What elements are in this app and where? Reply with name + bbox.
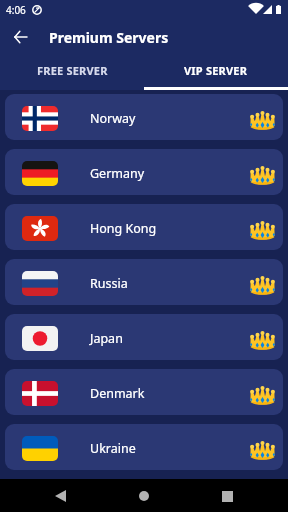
button[interactable]: Recents (215, 484, 239, 508)
staticText: Germany (90, 165, 145, 182)
staticText: 4:06 (6, 3, 26, 17)
staticText: Japan (90, 330, 123, 347)
staticText: FREE SERVER (37, 63, 108, 78)
staticText: Denmark (90, 385, 145, 402)
button[interactable]: FREE SERVER (0, 54, 144, 90)
staticText: Hong Kong (90, 220, 157, 237)
button[interactable]: Norway (5, 94, 283, 140)
button[interactable]: Back (48, 484, 72, 508)
staticText: Norway (90, 110, 136, 127)
staticText: Premium Servers (49, 28, 169, 47)
button[interactable]: Japan (5, 314, 283, 360)
button[interactable]: Hong Kong (5, 204, 283, 250)
button[interactable]: Germany (5, 149, 283, 195)
staticText: Russia (90, 275, 128, 292)
button[interactable]: Back (0, 20, 40, 54)
button[interactable]: Home (132, 484, 156, 508)
button[interactable]: Russia (5, 259, 283, 305)
button[interactable]: Denmark (5, 369, 283, 415)
staticText: VIP SERVER (184, 63, 248, 78)
button[interactable]: Ukraine (5, 424, 283, 470)
staticText: Ukraine (90, 440, 136, 457)
button[interactable]: VIP SERVER (144, 54, 288, 90)
